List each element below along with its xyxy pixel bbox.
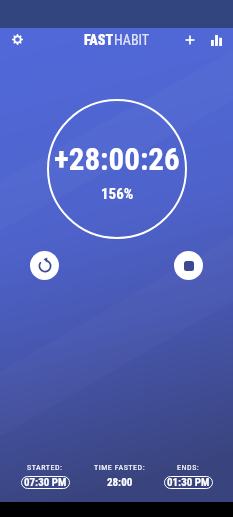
button[interactable]: +28:00:26 (47, 99, 187, 239)
button[interactable]: Stop fast (174, 251, 203, 280)
staticText: STARTED: (27, 463, 63, 472)
staticText: 07:30 PM (24, 476, 67, 489)
staticText: 156% (101, 185, 134, 203)
button[interactable]: Settings (7, 29, 28, 50)
button[interactable]: Add fast (179, 29, 201, 51)
staticText: HABIT (114, 32, 150, 48)
button[interactable]: Statistics (205, 29, 227, 51)
staticText: TIME FASTED: (94, 463, 146, 472)
staticText: 01:30 PM (167, 476, 210, 489)
staticText: ENDS: (177, 463, 200, 472)
button[interactable]: Restart fast (30, 251, 59, 280)
staticText: 28:00 (107, 476, 133, 489)
staticText: +28:00:26 (54, 141, 180, 177)
staticText: FAST (84, 32, 114, 48)
